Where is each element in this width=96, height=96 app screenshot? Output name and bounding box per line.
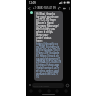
button[interactable]: Attachment option bbox=[55, 89, 59, 93]
staticText: Hi Bhai, thanks for your purchase of ₹12… bbox=[36, 12, 61, 79]
button[interactable]: More options bbox=[67, 6, 71, 10]
staticText: Text message bbox=[33, 84, 49, 87]
button[interactable]: Send bbox=[65, 83, 69, 87]
staticText: 12:09 bbox=[29, 1, 36, 5]
staticText: +1 (888) 555-0199 bbox=[33, 6, 56, 10]
button[interactable]: Attachment option bbox=[47, 89, 51, 93]
button[interactable]: Text message bbox=[32, 83, 64, 88]
button[interactable]: Attachment option bbox=[29, 89, 33, 93]
button[interactable]: Attachment option bbox=[64, 89, 68, 93]
button[interactable]: Hi Bhai, thanks for your purchase of ₹12… bbox=[34, 11, 63, 81]
button[interactable]: Attachment option bbox=[38, 89, 42, 93]
button[interactable]: Video call bbox=[62, 6, 67, 11]
button[interactable]: Back bbox=[27, 6, 32, 11]
button[interactable]: Call bbox=[57, 6, 62, 11]
button[interactable]: Add attachment bbox=[28, 83, 32, 87]
